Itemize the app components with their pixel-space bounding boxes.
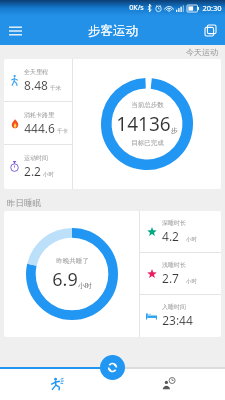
staticText: 步客运动 [88,23,138,39]
staticText: 小时 [186,236,197,243]
staticText: 20:30 [202,3,222,13]
button[interactable]: 全天里程 [4,59,72,101]
staticText: 昨日睡眠 [7,198,41,209]
staticText: 23:44 [162,312,193,328]
button[interactable]: 睡眠 [112,367,225,400]
button[interactable]: 运动 [0,367,112,400]
staticText: 小时 [186,278,197,285]
staticText: 0K/s [129,3,144,13]
staticText: 千米 [50,85,61,92]
staticText: 4.2 [162,228,179,244]
staticText: 2.7 [162,270,179,286]
button[interactable]: 菜单 [0,16,30,45]
button[interactable]: 运动时间 [4,145,72,187]
staticText: 步 [171,126,178,135]
staticText: 当前总步数 [131,101,164,109]
staticText: 6.9 [52,267,78,292]
staticText: 目标已完成 [131,139,164,147]
staticText: 2.2 [24,163,41,179]
staticText: 昨晚共睡了 [56,257,89,265]
button[interactable]: 浅睡时长 [140,253,221,294]
staticText: 8.48 [24,77,48,93]
staticText: 444.6 [24,120,55,136]
button[interactable]: 昨晚共睡了 [4,211,139,337]
button[interactable]: 消耗卡路里 [4,102,72,144]
button[interactable]: 入睡时间 [140,295,221,336]
button[interactable]: 切换 [195,16,225,45]
button[interactable]: 同步 [100,355,125,380]
staticText: 小时 [78,281,92,290]
staticText: 全天里程 [24,68,48,76]
button[interactable]: 当前总步数 [73,59,221,189]
staticText: 浅睡时长 [162,261,186,269]
staticText: 小时 [43,171,54,178]
staticText: 入睡时间 [162,303,186,311]
staticText: 深睡时长 [162,219,186,227]
button[interactable]: 深睡时长 [140,211,221,252]
staticText: 千卡 [57,128,68,135]
staticText: 消耗卡路里 [24,111,54,119]
staticText: 运动时间 [24,154,48,162]
staticText: 今天运动 [186,47,218,57]
staticText: 14136 [116,111,171,137]
